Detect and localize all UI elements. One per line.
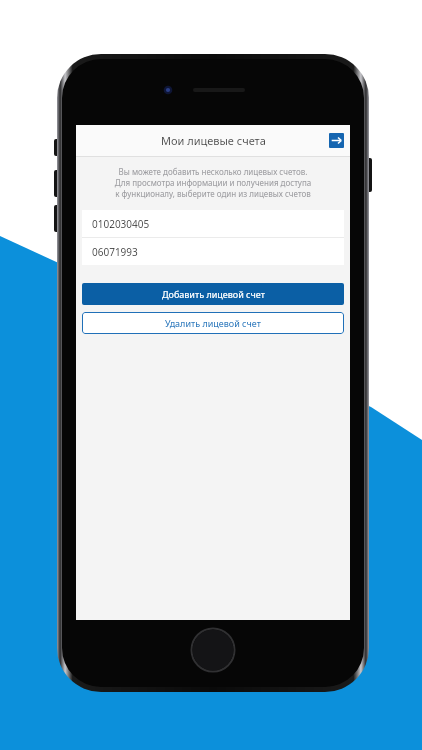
staticText: 0102030405 bbox=[92, 217, 150, 231]
button[interactable]: 0102030405 bbox=[82, 210, 344, 237]
button[interactable]: Добавить лицевой счет bbox=[82, 283, 344, 305]
staticText: Добавить лицевой счет bbox=[162, 288, 265, 300]
staticText: 06071993 bbox=[92, 245, 138, 259]
staticText: Вы можете добавить несколько лицевых сче… bbox=[79, 166, 347, 199]
staticText: Удалить лицевой счет bbox=[165, 317, 261, 329]
staticText: Мои лицевые счета bbox=[161, 133, 266, 148]
button[interactable]: 06071993 bbox=[82, 238, 344, 265]
button[interactable]: Выход bbox=[329, 133, 344, 148]
button[interactable]: Удалить лицевой счет bbox=[82, 312, 344, 334]
